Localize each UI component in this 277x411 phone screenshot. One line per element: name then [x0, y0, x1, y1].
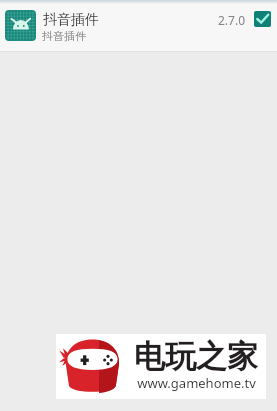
staticText: 电玩之家	[134, 337, 258, 372]
staticText: 2.7.0	[218, 12, 246, 28]
button[interactable]: Selected	[254, 11, 271, 27]
staticText: 抖音插件	[43, 11, 99, 29]
staticText: www.gamehome.tv	[137, 374, 256, 391]
staticText: 抖音插件	[42, 29, 86, 43]
button[interactable]: 抖音插件	[0, 0, 277, 51]
